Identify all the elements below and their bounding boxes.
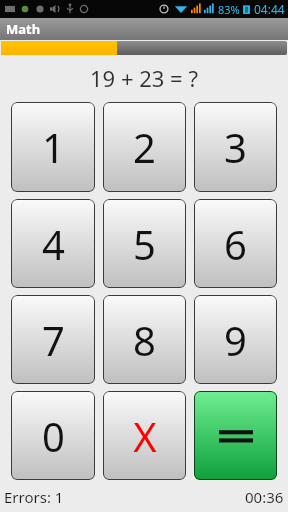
staticText: 6: [224, 217, 247, 271]
staticText: 8: [133, 313, 156, 367]
staticText: 3: [224, 120, 247, 174]
button[interactable]: 8: [103, 295, 186, 384]
staticText: X: [133, 409, 157, 463]
button[interactable]: 2: [103, 102, 186, 192]
button[interactable]: 1: [11, 102, 95, 192]
staticText: 9: [224, 313, 247, 367]
staticText: 00:36: [245, 487, 284, 507]
button[interactable]: 3: [194, 102, 277, 192]
button[interactable]: X: [103, 391, 186, 480]
button[interactable]: 9: [194, 295, 277, 384]
staticText: 7: [42, 313, 65, 367]
staticText: 4: [42, 217, 65, 271]
staticText: 1: [42, 120, 65, 174]
button[interactable]: 5: [103, 199, 186, 288]
staticText: Math: [6, 20, 41, 38]
staticText: 2: [133, 120, 156, 174]
button[interactable]: 0: [11, 391, 95, 480]
staticText: 5: [133, 217, 156, 271]
staticText: 04:44: [254, 1, 285, 17]
staticText: 0: [42, 409, 65, 463]
button[interactable]: 4: [11, 199, 95, 288]
button[interactable]: Equals, submit answer: [194, 391, 277, 480]
staticText: Errors: 1: [4, 487, 64, 507]
button[interactable]: 7: [11, 295, 95, 384]
staticText: 83%: [218, 2, 240, 17]
staticText: 19 + 23 = ?: [90, 63, 198, 93]
button[interactable]: 6: [194, 199, 277, 288]
